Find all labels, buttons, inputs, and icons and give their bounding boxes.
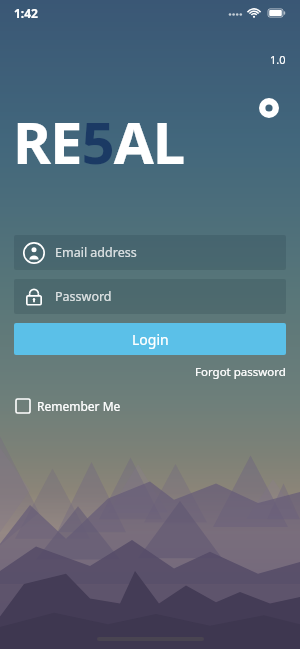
staticText: Email address	[55, 244, 137, 261]
button[interactable]: Login	[14, 323, 286, 355]
button[interactable]: Email address	[14, 235, 286, 270]
staticText: Forgot password	[195, 364, 286, 380]
staticText: Password	[55, 288, 112, 305]
staticText: RE5AL	[13, 102, 185, 181]
staticText: Remember Me	[37, 398, 121, 414]
button[interactable]: Password	[14, 279, 286, 314]
staticText: 1.0	[270, 52, 286, 67]
button[interactable]: Remember Me	[14, 395, 123, 417]
staticText: 1:42	[14, 5, 38, 21]
staticText: Login	[132, 330, 169, 349]
button[interactable]: Forgot password	[181, 361, 300, 383]
